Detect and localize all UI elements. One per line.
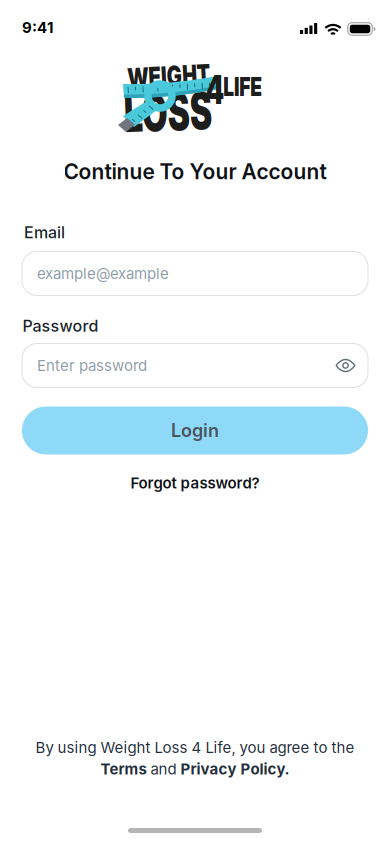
staticText: WEIGHT	[112, 59, 226, 93]
textField[interactable]: example@example	[37, 264, 355, 282]
staticText: Terms	[100, 760, 146, 778]
staticText: 4	[201, 67, 228, 113]
staticText: Continue To Your Account	[63, 159, 326, 184]
staticText: and	[146, 760, 180, 778]
staticText: Email	[24, 223, 65, 242]
staticText: Enter password	[37, 356, 147, 374]
staticText: example@example	[37, 264, 169, 282]
textField[interactable]: Enter password	[37, 356, 327, 374]
button[interactable]: Show password	[327, 350, 355, 380]
staticText: 9:41	[22, 18, 53, 36]
staticText: Forgot password?	[130, 474, 259, 492]
button[interactable]: Login	[22, 406, 368, 454]
button[interactable]: Forgot password?	[130, 474, 259, 492]
staticText: Login	[171, 420, 219, 441]
staticText: example@example	[37, 264, 169, 282]
staticText: Privacy Policy.	[180, 760, 289, 778]
staticText: LOSS	[101, 81, 235, 143]
button[interactable]: Privacy Policy.	[180, 760, 289, 778]
staticText: Enter password	[37, 356, 147, 374]
staticText: By using Weight Loss 4 Life, you agree t…	[35, 738, 354, 756]
staticText: LIFE	[216, 71, 269, 102]
button[interactable]: Terms	[100, 760, 146, 778]
staticText: Password	[22, 316, 98, 336]
